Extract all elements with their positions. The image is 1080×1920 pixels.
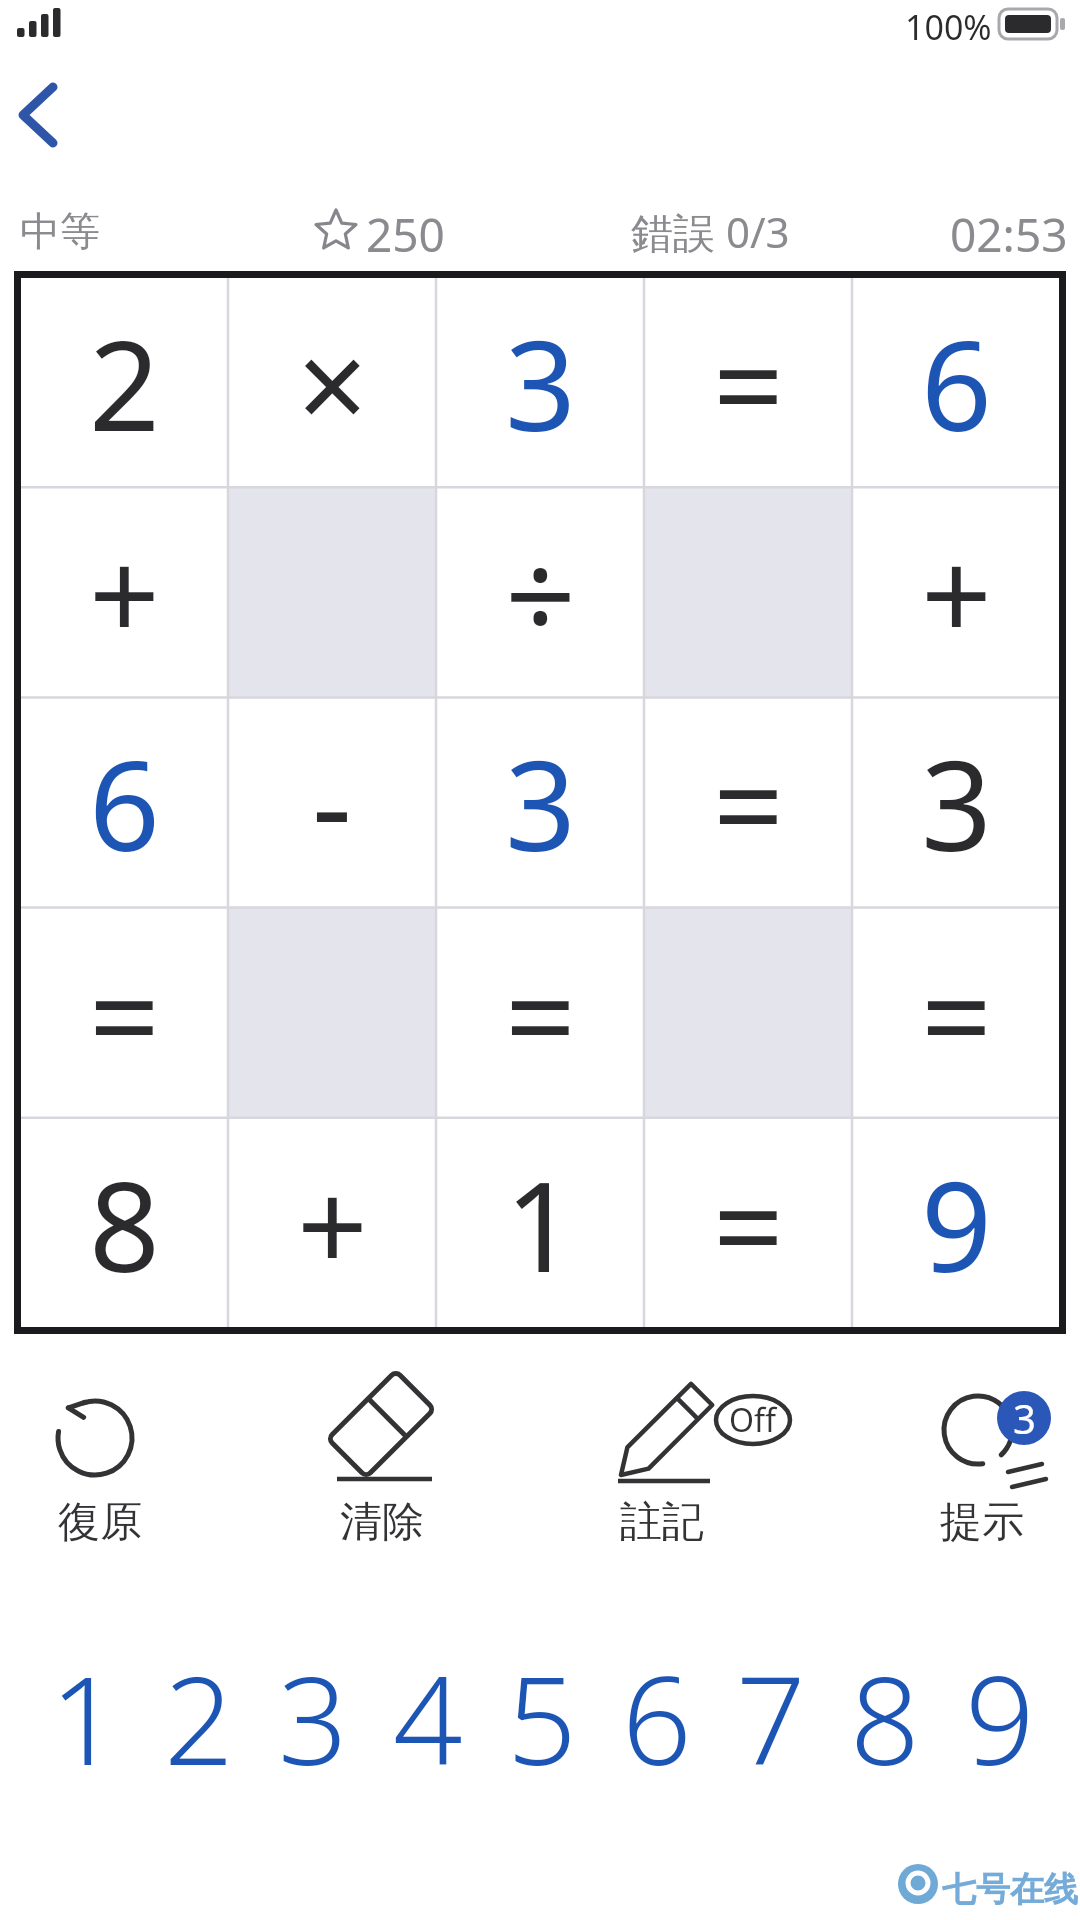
staticText: 100%	[905, 4, 992, 44]
button[interactable]: ÷	[436, 487, 644, 697]
staticText: Off	[729, 1398, 777, 1442]
staticText: 清除	[340, 1496, 424, 1546]
staticText: 6	[622, 1635, 692, 1801]
button[interactable]: +	[20, 487, 228, 697]
staticText: =	[713, 718, 784, 887]
button[interactable]: -	[228, 697, 436, 907]
staticText: 8	[89, 1139, 160, 1308]
staticText: 3	[505, 718, 576, 887]
button[interactable]	[6, 72, 92, 158]
staticText: 3	[921, 718, 992, 887]
button[interactable]: =	[644, 277, 852, 487]
staticText: 4	[393, 1635, 463, 1801]
button[interactable]: =	[852, 908, 1060, 1118]
button[interactable]: 8	[828, 1630, 942, 1805]
button[interactable]: 2	[20, 277, 228, 487]
button[interactable]: 8	[20, 1118, 228, 1328]
button[interactable]: ×	[228, 277, 436, 487]
staticText: -	[312, 718, 352, 887]
staticText: 2	[164, 1635, 234, 1801]
staticText: =	[713, 298, 784, 467]
staticText: 250	[366, 203, 445, 259]
button[interactable]: 3	[852, 697, 1060, 907]
button[interactable]: 1	[436, 1118, 644, 1328]
button[interactable]: 7	[714, 1630, 828, 1805]
staticText: 8	[850, 1635, 920, 1801]
staticText: 6	[89, 718, 160, 887]
button[interactable]: 清除	[306, 1388, 456, 1558]
button[interactable]: 復原	[25, 1388, 175, 1558]
staticText: =	[505, 929, 576, 1098]
button[interactable]: 3	[436, 697, 644, 907]
staticText: 七号在线	[942, 1868, 1078, 1908]
staticText: =	[921, 929, 992, 1098]
button[interactable]: 9	[943, 1630, 1057, 1805]
staticText: 9	[965, 1635, 1035, 1801]
staticText: 1	[505, 1139, 576, 1308]
staticText: +	[297, 1139, 368, 1308]
staticText: =	[89, 929, 160, 1098]
button[interactable]: +	[228, 1118, 436, 1328]
staticText: 1	[50, 1635, 120, 1801]
staticText: 復原	[58, 1496, 142, 1546]
staticText: ÷	[505, 508, 576, 677]
button[interactable]: 5	[485, 1630, 599, 1805]
staticText: 註記	[620, 1496, 704, 1546]
staticText: +	[89, 508, 160, 677]
staticText: 9	[921, 1139, 992, 1308]
staticText: 3	[505, 298, 576, 467]
staticText: 錯誤 0/3	[631, 203, 790, 259]
staticText: 6	[921, 298, 992, 467]
button[interactable]: Off	[592, 1388, 802, 1558]
button[interactable]: 4	[371, 1630, 485, 1805]
staticText: +	[921, 508, 992, 677]
button[interactable]: =	[644, 1118, 852, 1328]
staticText: 中等	[20, 206, 100, 256]
button[interactable]: =	[20, 908, 228, 1118]
button[interactable]: 6	[20, 697, 228, 907]
button[interactable]: 1	[28, 1630, 142, 1805]
staticText: 5	[507, 1635, 577, 1801]
button[interactable]: 3	[436, 277, 644, 487]
staticText: 7	[736, 1635, 806, 1801]
staticText: 提示	[940, 1496, 1024, 1546]
button[interactable]: 2	[142, 1630, 256, 1805]
button[interactable]: 6	[600, 1630, 714, 1805]
staticText: =	[713, 1139, 784, 1308]
button[interactable]: 3	[905, 1388, 1070, 1558]
button[interactable]: =	[436, 908, 644, 1118]
staticText: 02:53	[950, 203, 1068, 259]
staticText: 2	[89, 298, 160, 467]
staticText: 3	[1013, 1391, 1036, 1445]
button[interactable]: +	[852, 487, 1060, 697]
staticText: 3	[278, 1635, 348, 1801]
button[interactable]: =	[644, 697, 852, 907]
button[interactable]: 3	[256, 1630, 370, 1805]
button[interactable]: 6	[852, 277, 1060, 487]
button[interactable]: 9	[852, 1118, 1060, 1328]
staticText: ×	[297, 298, 368, 467]
